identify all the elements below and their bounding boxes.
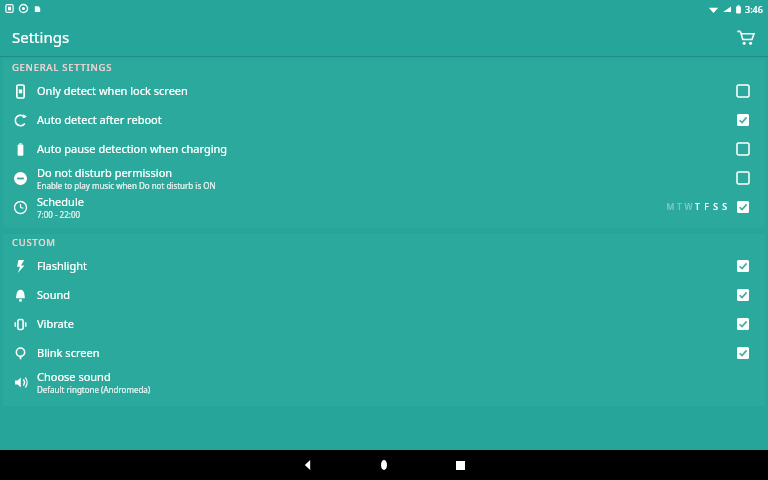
button[interactable]: Unchecked xyxy=(732,80,754,102)
staticText: Auto pause detection when charging xyxy=(37,141,228,156)
staticText: Schedule xyxy=(37,194,84,209)
button[interactable]: Checked xyxy=(732,284,754,306)
button[interactable]: Checked xyxy=(732,109,754,131)
staticText: W xyxy=(684,201,693,213)
button[interactable]: Sound xyxy=(3,280,765,309)
button[interactable]: Choose sound xyxy=(3,367,765,396)
button[interactable]: Blink screen xyxy=(3,338,765,367)
staticText: Do not disturb permission xyxy=(37,165,173,180)
button[interactable]: Only detect when lock screen xyxy=(3,76,765,105)
staticText: CUSTOM xyxy=(12,236,56,249)
staticText: Default ringtone (Andromeda) xyxy=(37,384,151,395)
staticText: S xyxy=(711,201,720,213)
button[interactable]: Checked xyxy=(732,255,754,277)
staticText: Enable to play music when Do not disturb… xyxy=(37,180,216,191)
staticText: Vibrate xyxy=(37,316,74,331)
button[interactable]: Back xyxy=(288,450,328,480)
button[interactable]: Checked xyxy=(732,342,754,364)
button[interactable]: Home xyxy=(364,450,404,480)
staticText: GENERAL SETTINGS xyxy=(12,61,113,74)
staticText: T xyxy=(675,201,684,213)
staticText: 7:00 - 22:00 xyxy=(37,209,81,220)
button[interactable]: Do not disturb permission xyxy=(3,163,765,192)
button[interactable]: Auto pause detection when charging xyxy=(3,134,765,163)
staticText: 3:46 xyxy=(745,3,763,15)
staticText: S xyxy=(720,201,729,213)
button[interactable]: Shop xyxy=(730,22,760,52)
staticText: Choose sound xyxy=(37,369,111,384)
staticText: Settings xyxy=(12,27,70,47)
staticText: T xyxy=(693,201,702,213)
button[interactable]: Recents xyxy=(440,450,480,480)
staticText: Sound xyxy=(37,287,71,302)
button[interactable]: Flashlight xyxy=(3,251,765,280)
button[interactable]: Unchecked xyxy=(732,167,754,189)
staticText: Auto detect after reboot xyxy=(37,112,162,127)
staticText: M xyxy=(666,201,675,213)
button[interactable]: Auto detect after reboot xyxy=(3,105,765,134)
button[interactable]: Checked xyxy=(732,196,754,218)
staticText: Flashlight xyxy=(37,258,87,273)
staticText: F xyxy=(702,201,711,213)
staticText: Only detect when lock screen xyxy=(37,83,188,98)
button[interactable]: Checked xyxy=(732,313,754,335)
button[interactable]: Vibrate xyxy=(3,309,765,338)
button[interactable]: Schedule xyxy=(3,192,765,222)
button[interactable]: Unchecked xyxy=(732,138,754,160)
staticText: Blink screen xyxy=(37,345,100,360)
